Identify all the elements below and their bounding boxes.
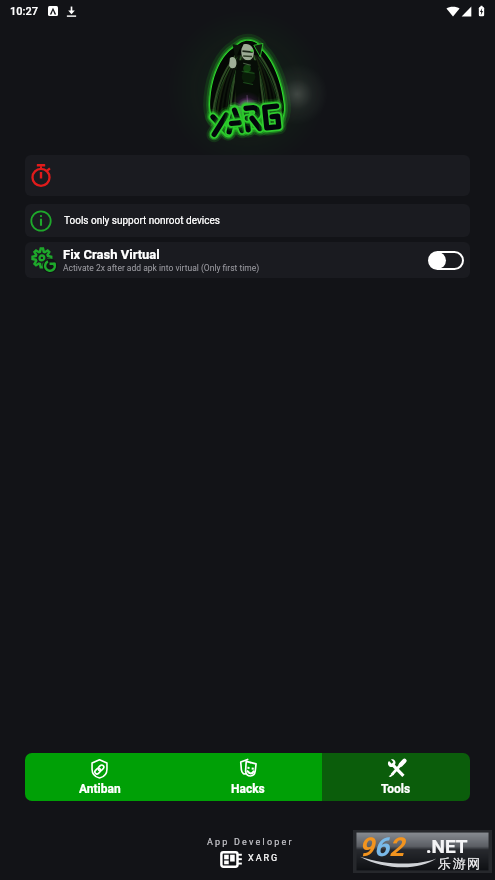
staticText: 10:27 — [10, 5, 38, 18]
staticText: App Developer — [207, 837, 294, 848]
staticText: Hacks — [231, 782, 265, 796]
staticText: Tools — [381, 782, 411, 796]
staticText: Tools only support nonroot devices — [64, 215, 220, 227]
button[interactable]: Hacks — [174, 753, 322, 801]
staticText: Antiban — [79, 782, 121, 796]
staticText: XARG — [248, 853, 280, 864]
staticText: 乐游网 — [438, 855, 482, 871]
staticText: Fix Crash Virtual — [63, 247, 160, 262]
staticText: Activate 2x after add apk into virtual (… — [63, 263, 260, 273]
button[interactable]: Fix Crash Virtual toggle — [428, 249, 464, 271]
staticText: 2 — [389, 832, 404, 862]
button[interactable]: Fix Crash Virtual — [25, 242, 470, 278]
staticText: .NET — [426, 835, 468, 857]
button[interactable]: Tools — [322, 753, 470, 801]
staticText: 9 — [359, 832, 374, 862]
button[interactable]: Timer — [25, 155, 470, 196]
button[interactable]: Antiban — [25, 753, 174, 801]
button[interactable]: Tools only support nonroot devices — [25, 204, 470, 237]
staticText: 6 — [374, 832, 389, 862]
